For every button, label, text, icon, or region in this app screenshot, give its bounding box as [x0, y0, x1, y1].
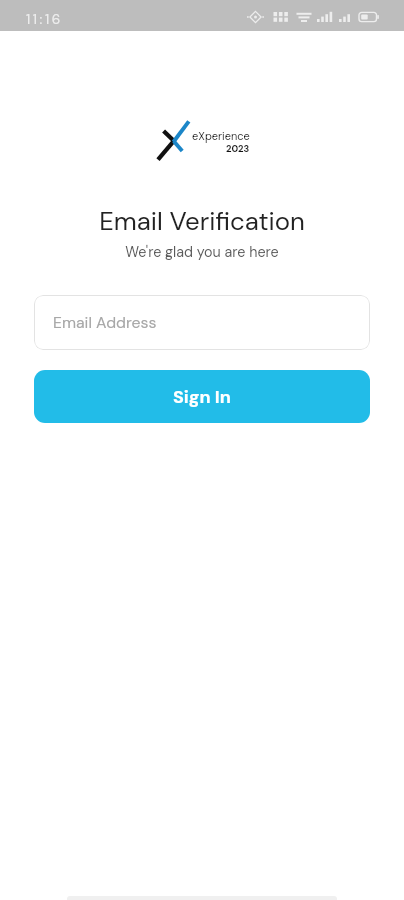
staticText: Email Address [53, 312, 157, 333]
staticText: We're glad you are here [0, 243, 404, 262]
staticText: eXperience [192, 129, 250, 143]
staticText: Sign In [173, 385, 231, 408]
staticText: Email Verification [0, 204, 404, 238]
button[interactable]: Email Address [34, 295, 370, 350]
staticText: 2023 [226, 143, 250, 155]
staticText: 11:16 [26, 11, 63, 29]
button[interactable]: Sign In [34, 370, 370, 423]
